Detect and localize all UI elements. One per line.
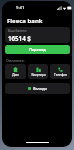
button[interactable]: Ваш баланс:: [5, 27, 70, 43]
staticText: Квартира: [31, 73, 46, 77]
other: Status icons: [57, 6, 70, 10]
staticText: Вклады: [33, 86, 48, 91]
button[interactable]: Дом: [5, 64, 26, 79]
staticText: 16514 $: [8, 34, 31, 42]
staticText: Перевод: [29, 47, 46, 52]
staticText: Оплатить:: [6, 58, 25, 63]
button[interactable]: Перевод: [5, 45, 70, 54]
staticText: Ваш баланс:: [8, 29, 28, 33]
staticText: 9:41: [16, 5, 25, 11]
button[interactable]: Телефон: [50, 64, 70, 79]
staticText: Дом: [12, 73, 19, 77]
button[interactable]: Вклады: [5, 83, 70, 94]
staticText: Телефон: [54, 73, 67, 77]
staticText: Fleeca bank: [7, 17, 43, 25]
button[interactable]: Квартира: [28, 64, 48, 79]
